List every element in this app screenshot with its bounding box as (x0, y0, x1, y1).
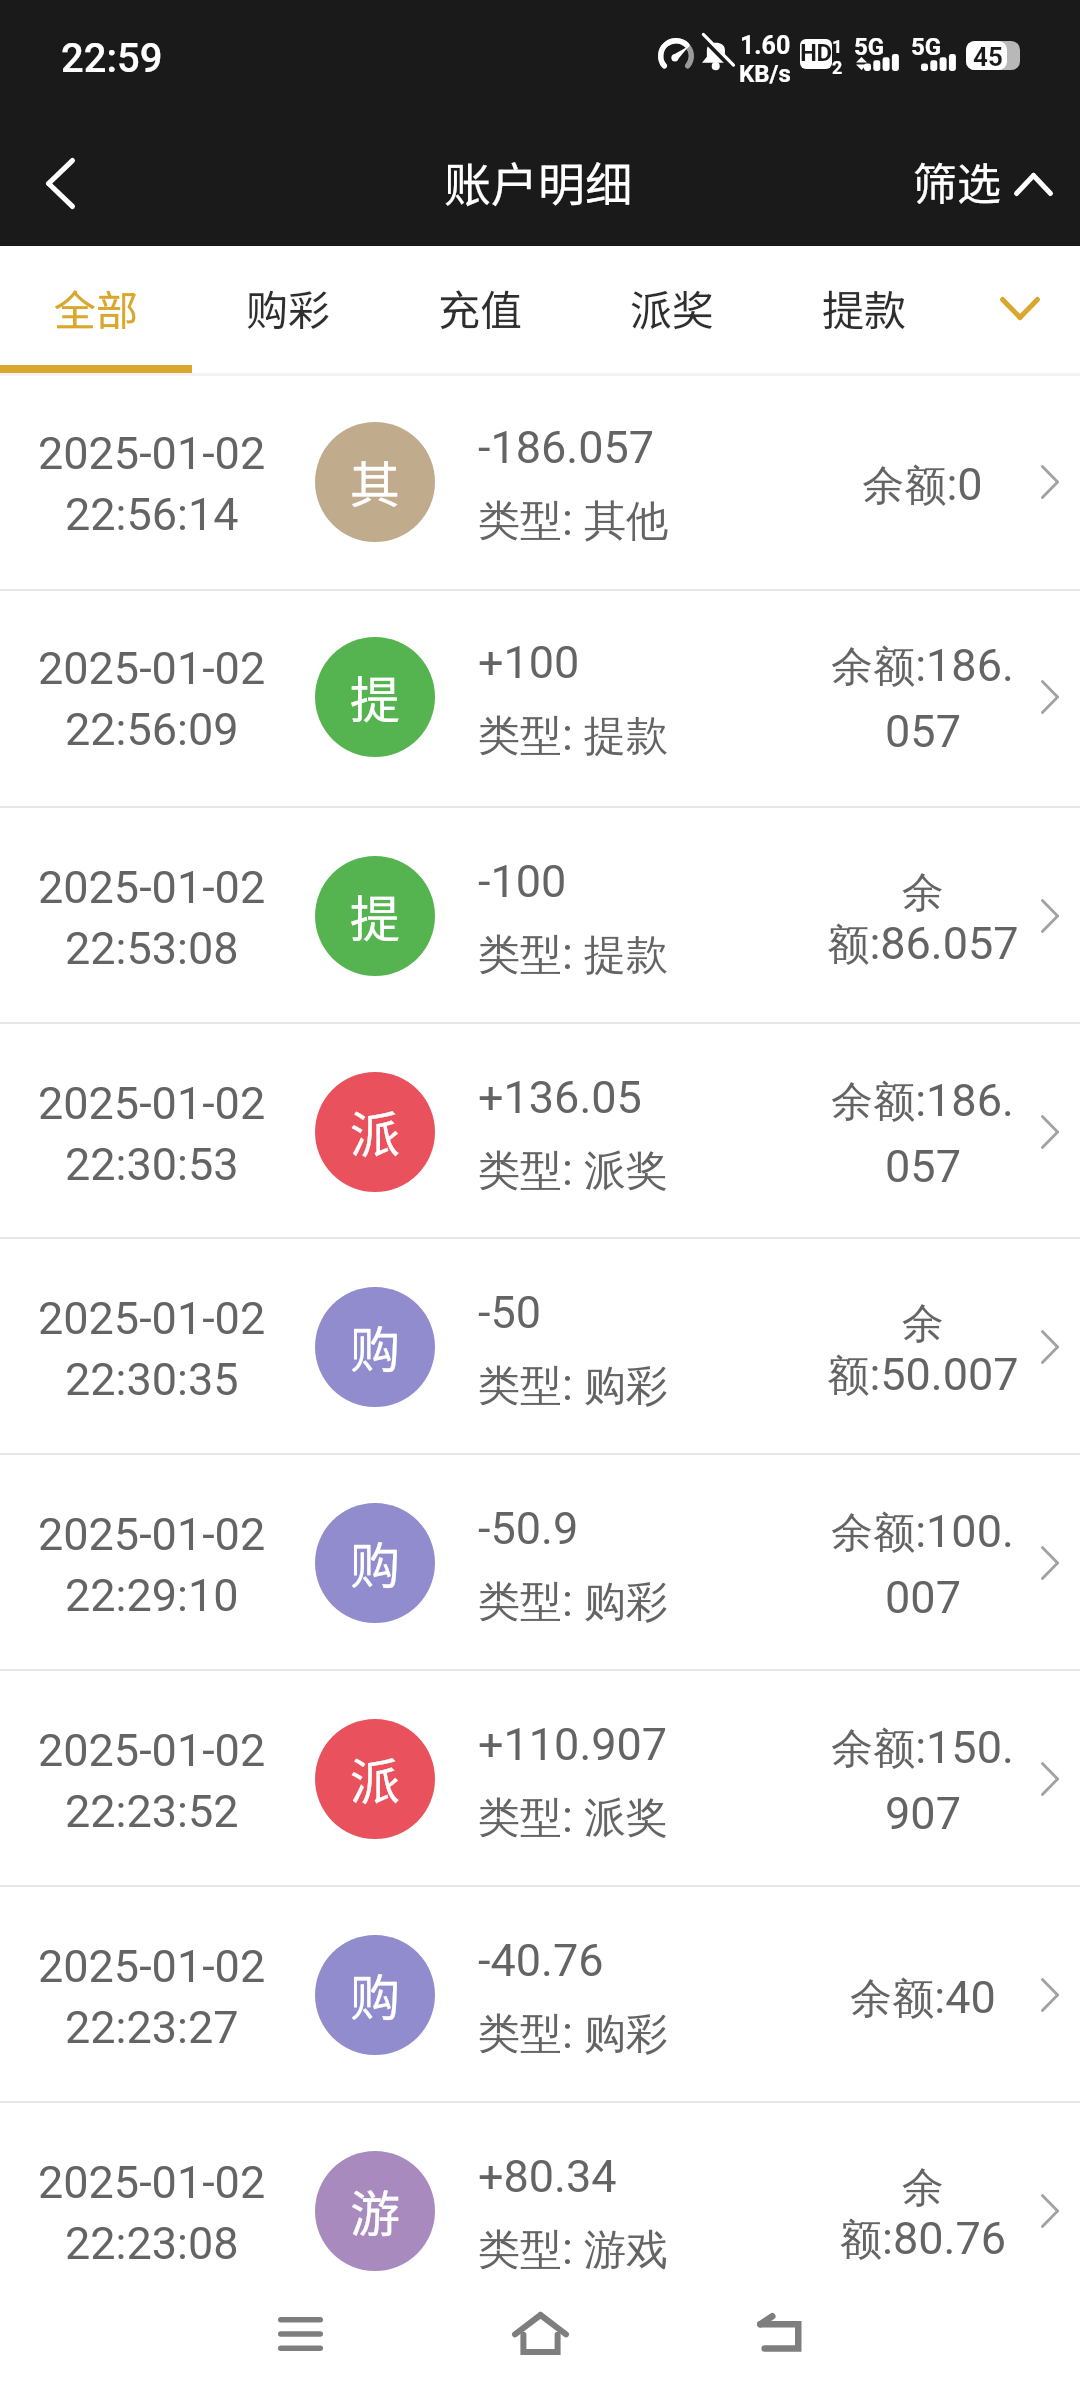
staticText: 22:29:10 (65, 1569, 239, 1622)
button[interactable]: 2025-01-02 (0, 376, 1080, 591)
staticText: 907 (885, 1787, 961, 1840)
staticText: 游 (350, 2174, 400, 2246)
staticText: 额:50.007 (827, 1348, 1019, 1402)
button[interactable]: Back (725, 2281, 835, 2391)
staticText: 余额:40 (850, 1971, 996, 2025)
staticText: 22:30:35 (65, 1353, 239, 1406)
staticText: 057 (885, 705, 961, 758)
staticText: 2025-01-02 (38, 1077, 266, 1130)
staticText: 类型: 提款 (478, 927, 669, 981)
button[interactable]: 派奖 (576, 246, 768, 376)
staticText: 余额:186. (831, 639, 1014, 693)
staticText: 购 (350, 1958, 400, 2030)
staticText: 类型: 派奖 (478, 1790, 669, 1844)
staticText: 余 (902, 867, 944, 920)
staticText: 全部 (54, 277, 139, 338)
staticText: +136.05 (478, 1071, 642, 1124)
button[interactable]: 筛选 (913, 110, 1058, 246)
button[interactable]: 2025-01-02 (0, 2103, 1080, 2319)
staticText: 22:56:09 (65, 703, 239, 756)
staticText: 提 (350, 660, 400, 732)
staticText: 22:23:52 (65, 1785, 239, 1838)
staticText: 余额:150. (831, 1721, 1014, 1775)
staticText: 筛选 (913, 149, 1001, 213)
staticText: 类型: 购彩 (478, 1358, 669, 1412)
button[interactable]: 2025-01-02 (0, 1239, 1080, 1455)
staticText: 2025-01-02 (38, 642, 266, 695)
staticText: 账户明细 (444, 147, 632, 215)
staticText: 类型: 提款 (478, 708, 669, 762)
staticText: +100 (478, 636, 580, 689)
staticText: 购 (350, 1310, 400, 1382)
button[interactable]: 2025-01-02 (0, 808, 1080, 1024)
staticText: 2025-01-02 (38, 1940, 266, 1993)
staticText: -50.9 (478, 1502, 579, 1555)
button[interactable]: Back (0, 110, 116, 246)
staticText: 1.60 (740, 31, 791, 60)
staticText: 类型: 派奖 (478, 1143, 669, 1197)
staticText: 45 (973, 42, 1003, 72)
staticText: 类型: 游戏 (478, 2222, 669, 2276)
button[interactable]: 提款 (768, 246, 960, 376)
staticText: 其 (350, 445, 400, 517)
staticText: +110.907 (478, 1718, 668, 1771)
staticText: 类型: 购彩 (478, 1574, 669, 1628)
staticText: 5G (911, 33, 942, 61)
staticText: 22:23:08 (65, 2217, 239, 2270)
staticText: 余额:100. (831, 1505, 1014, 1559)
staticText: 余 (902, 2162, 944, 2215)
staticText: 派 (350, 1095, 400, 1167)
staticText: HD (800, 39, 832, 67)
staticText: -186.057 (478, 421, 655, 474)
staticText: 007 (885, 1571, 961, 1624)
staticText: 2025-01-02 (38, 1724, 266, 1777)
staticText: 22:23:27 (65, 2001, 239, 2054)
button[interactable]: 2025-01-02 (0, 1671, 1080, 1887)
staticText: 1 (832, 36, 843, 57)
staticText: 2025-01-02 (38, 427, 266, 480)
button[interactable]: 全部 (0, 246, 192, 376)
staticText: +80.34 (478, 2150, 617, 2203)
staticText: -40.76 (478, 1934, 604, 1987)
staticText: 2025-01-02 (38, 2156, 266, 2209)
staticText: 类型: 其他 (478, 493, 669, 547)
staticText: 22:59 (61, 35, 163, 82)
staticText: 额:86.057 (827, 917, 1019, 971)
staticText: KB/s (739, 60, 791, 88)
staticText: 余额:186. (831, 1074, 1014, 1128)
staticText: -50 (478, 1286, 542, 1339)
button[interactable]: 2025-01-02 (0, 591, 1080, 808)
staticText: 22:53:08 (65, 922, 239, 975)
staticText: 2025-01-02 (38, 861, 266, 914)
button[interactable]: 2025-01-02 (0, 1887, 1080, 2103)
button[interactable]: More filters (960, 246, 1080, 376)
button[interactable]: Recent apps (245, 2279, 355, 2389)
button[interactable]: 充值 (384, 246, 576, 376)
staticText: 057 (885, 1140, 961, 1193)
staticText: 类型: 购彩 (478, 2006, 669, 2060)
staticText: 提 (350, 879, 400, 951)
staticText: -100 (478, 855, 567, 908)
staticText: 派奖 (630, 277, 715, 338)
staticText: 购 (350, 1526, 400, 1598)
staticText: 购彩 (246, 277, 331, 338)
button[interactable]: 2025-01-02 (0, 1024, 1080, 1239)
button[interactable]: Home (485, 2278, 595, 2388)
button[interactable]: 购彩 (192, 246, 384, 376)
staticText: 提款 (822, 277, 907, 338)
staticText: 充值 (438, 277, 523, 338)
button[interactable]: 2025-01-02 (0, 1455, 1080, 1671)
staticText: 2 (832, 57, 843, 78)
staticText: 额:80.76 (840, 2212, 1006, 2266)
staticText: 余额:0 (862, 458, 983, 512)
staticText: 2025-01-02 (38, 1292, 266, 1345)
staticText: 2025-01-02 (38, 1508, 266, 1561)
staticText: 22:56:14 (65, 488, 239, 541)
staticText: 派 (350, 1742, 400, 1814)
staticText: 余 (902, 1298, 944, 1351)
staticText: 22:30:53 (65, 1138, 239, 1191)
staticText: 5G (854, 33, 885, 61)
